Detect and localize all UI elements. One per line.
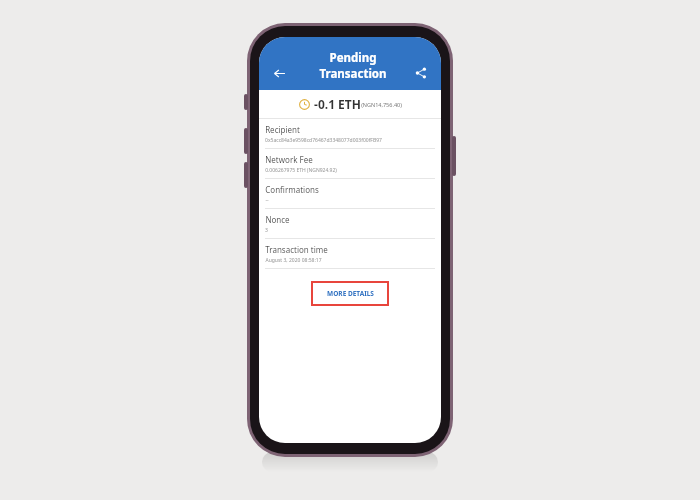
button[interactable]: MORE DETAILS — [311, 281, 389, 306]
button[interactable]: Back — [267, 61, 291, 85]
button[interactable]: Confirmations — [259, 179, 441, 209]
staticText: 0.006267975 ETH (NGN924.92) — [265, 167, 337, 174]
button[interactable]: Recipient — [259, 119, 441, 149]
staticText: MORE DETAILS — [327, 289, 374, 298]
staticText: (NGN14,756.40) — [361, 101, 402, 108]
staticText: Pending Transaction — [297, 50, 409, 82]
staticText: 0x5acc84a3e9598cd76467d3348077d003f00fFB… — [265, 137, 382, 144]
button[interactable]: Network Fee — [259, 149, 441, 179]
staticText: August 3, 2020 08:58:17 — [265, 257, 322, 264]
staticText: Recipient — [265, 124, 300, 135]
button[interactable]: Share — [409, 61, 433, 85]
button[interactable]: Nonce — [259, 209, 441, 239]
staticText: -- — [265, 197, 269, 204]
staticText: Network Fee — [265, 154, 313, 165]
staticText: 3 — [265, 227, 268, 234]
staticText: Transaction time — [265, 244, 328, 255]
staticText: Confirmations — [265, 184, 319, 195]
button[interactable]: Transaction time — [259, 239, 441, 269]
staticText: Nonce — [265, 214, 290, 225]
staticText: -0.1 ETH — [314, 96, 361, 112]
